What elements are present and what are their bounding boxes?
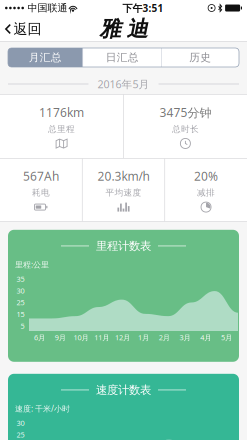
staticText: 总里程 <box>48 124 75 134</box>
button[interactable]: 1176km <box>0 95 123 158</box>
button[interactable]: 返回 <box>0 14 41 44</box>
staticText: 月汇总 <box>29 51 62 64</box>
staticText: 30 <box>16 286 24 296</box>
staticText: 下午3:51 <box>122 1 163 15</box>
button[interactable]: 日汇总 <box>83 48 161 67</box>
staticText: 雅 <box>99 16 120 42</box>
staticText: 25 <box>16 297 24 307</box>
staticText: 速度: 千米/小时 <box>15 403 70 414</box>
staticText: 历史 <box>189 51 211 64</box>
button[interactable]: 567Ah <box>0 159 82 221</box>
staticText: 11月 <box>94 332 109 342</box>
staticText: 平均速度 <box>105 187 141 198</box>
staticText: 567Ah <box>23 168 59 184</box>
staticText: 3月 <box>179 332 190 342</box>
staticText: 5 <box>20 321 24 331</box>
staticText: 35 <box>16 274 24 284</box>
staticText: 12月 <box>115 332 130 342</box>
staticText: 2016年5月 <box>97 77 149 91</box>
staticText: 6月 <box>34 332 45 342</box>
button[interactable]: 月汇总 <box>8 48 83 67</box>
staticText: 20% <box>194 168 218 184</box>
staticText: 3475分钟 <box>159 104 211 120</box>
staticText: 5月 <box>221 332 232 342</box>
staticText: 1月 <box>138 332 149 342</box>
staticText: 减排 <box>197 187 215 198</box>
button[interactable]: 20% <box>165 159 247 221</box>
staticText: 9月 <box>55 332 66 342</box>
staticText: 30 <box>16 418 24 428</box>
button[interactable]: 20.3km/h <box>82 159 164 221</box>
staticText: 里程计数表 <box>96 239 151 253</box>
staticText: 迪 <box>126 16 147 42</box>
staticText: 里程:公里 <box>15 259 49 270</box>
button[interactable]: 3475分钟 <box>124 95 247 158</box>
staticText: 10月 <box>73 332 88 342</box>
staticText: 1176km <box>39 104 84 120</box>
staticText: 25 <box>16 430 24 440</box>
staticText: 20.3km/h <box>97 168 149 184</box>
staticText: 4月 <box>200 332 211 342</box>
staticText: 总时长 <box>172 124 199 134</box>
staticText: 2月 <box>159 332 170 342</box>
button[interactable]: 历史 <box>162 48 239 67</box>
staticText: 速度计数表 <box>96 383 151 397</box>
staticText: 日汇总 <box>106 51 139 64</box>
staticText: 耗电 <box>32 187 50 198</box>
staticText: 返回 <box>13 20 41 38</box>
staticText: 15 <box>16 309 24 319</box>
staticText: 中国联通 <box>27 2 67 14</box>
